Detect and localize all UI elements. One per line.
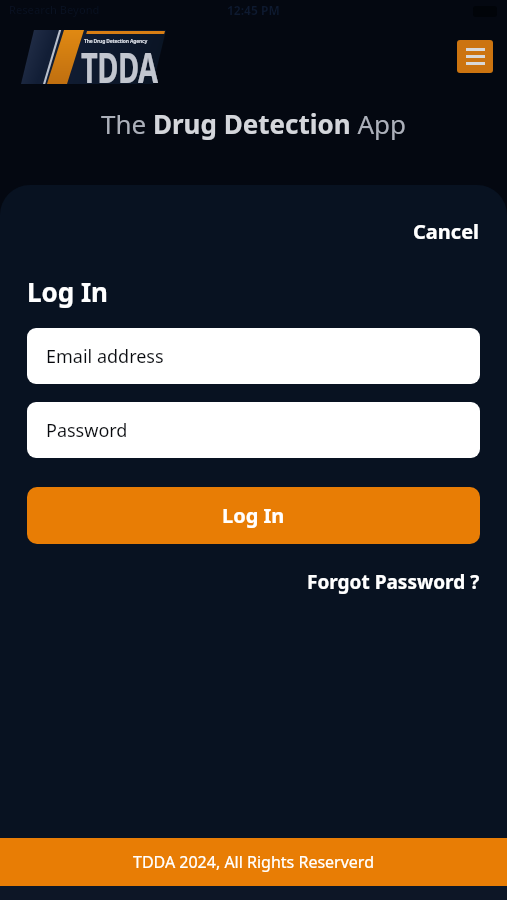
- staticText: Log In: [27, 274, 108, 309]
- button[interactable]: [457, 40, 493, 73]
- button[interactable]: Log In: [27, 487, 480, 544]
- staticText: Research Beyond: [9, 2, 100, 17]
- button[interactable]: Password: [27, 402, 480, 458]
- button[interactable]: Cancel: [413, 218, 480, 245]
- button[interactable]: Forgot Password ?: [307, 569, 480, 595]
- staticText: TDDA: [81, 39, 158, 94]
- staticText: Cancel: [413, 218, 480, 245]
- staticText: TDDA 2024, All Rights Reserverd: [133, 851, 374, 873]
- button[interactable]: TDDA 2024, All Rights Reserverd: [0, 838, 507, 886]
- staticText: The Drug Detection Agency: [84, 38, 148, 45]
- button[interactable]: Email address: [27, 328, 480, 384]
- staticText: Password: [46, 418, 128, 443]
- button[interactable]: The Drug Detection Agency: [20, 30, 166, 84]
- staticText: Email address: [46, 344, 164, 369]
- staticText: 12:45 PM: [227, 2, 280, 18]
- staticText: The Drug Detection App: [101, 106, 407, 141]
- staticText: Log In: [222, 502, 285, 529]
- staticText: Forgot Password ?: [307, 569, 480, 595]
